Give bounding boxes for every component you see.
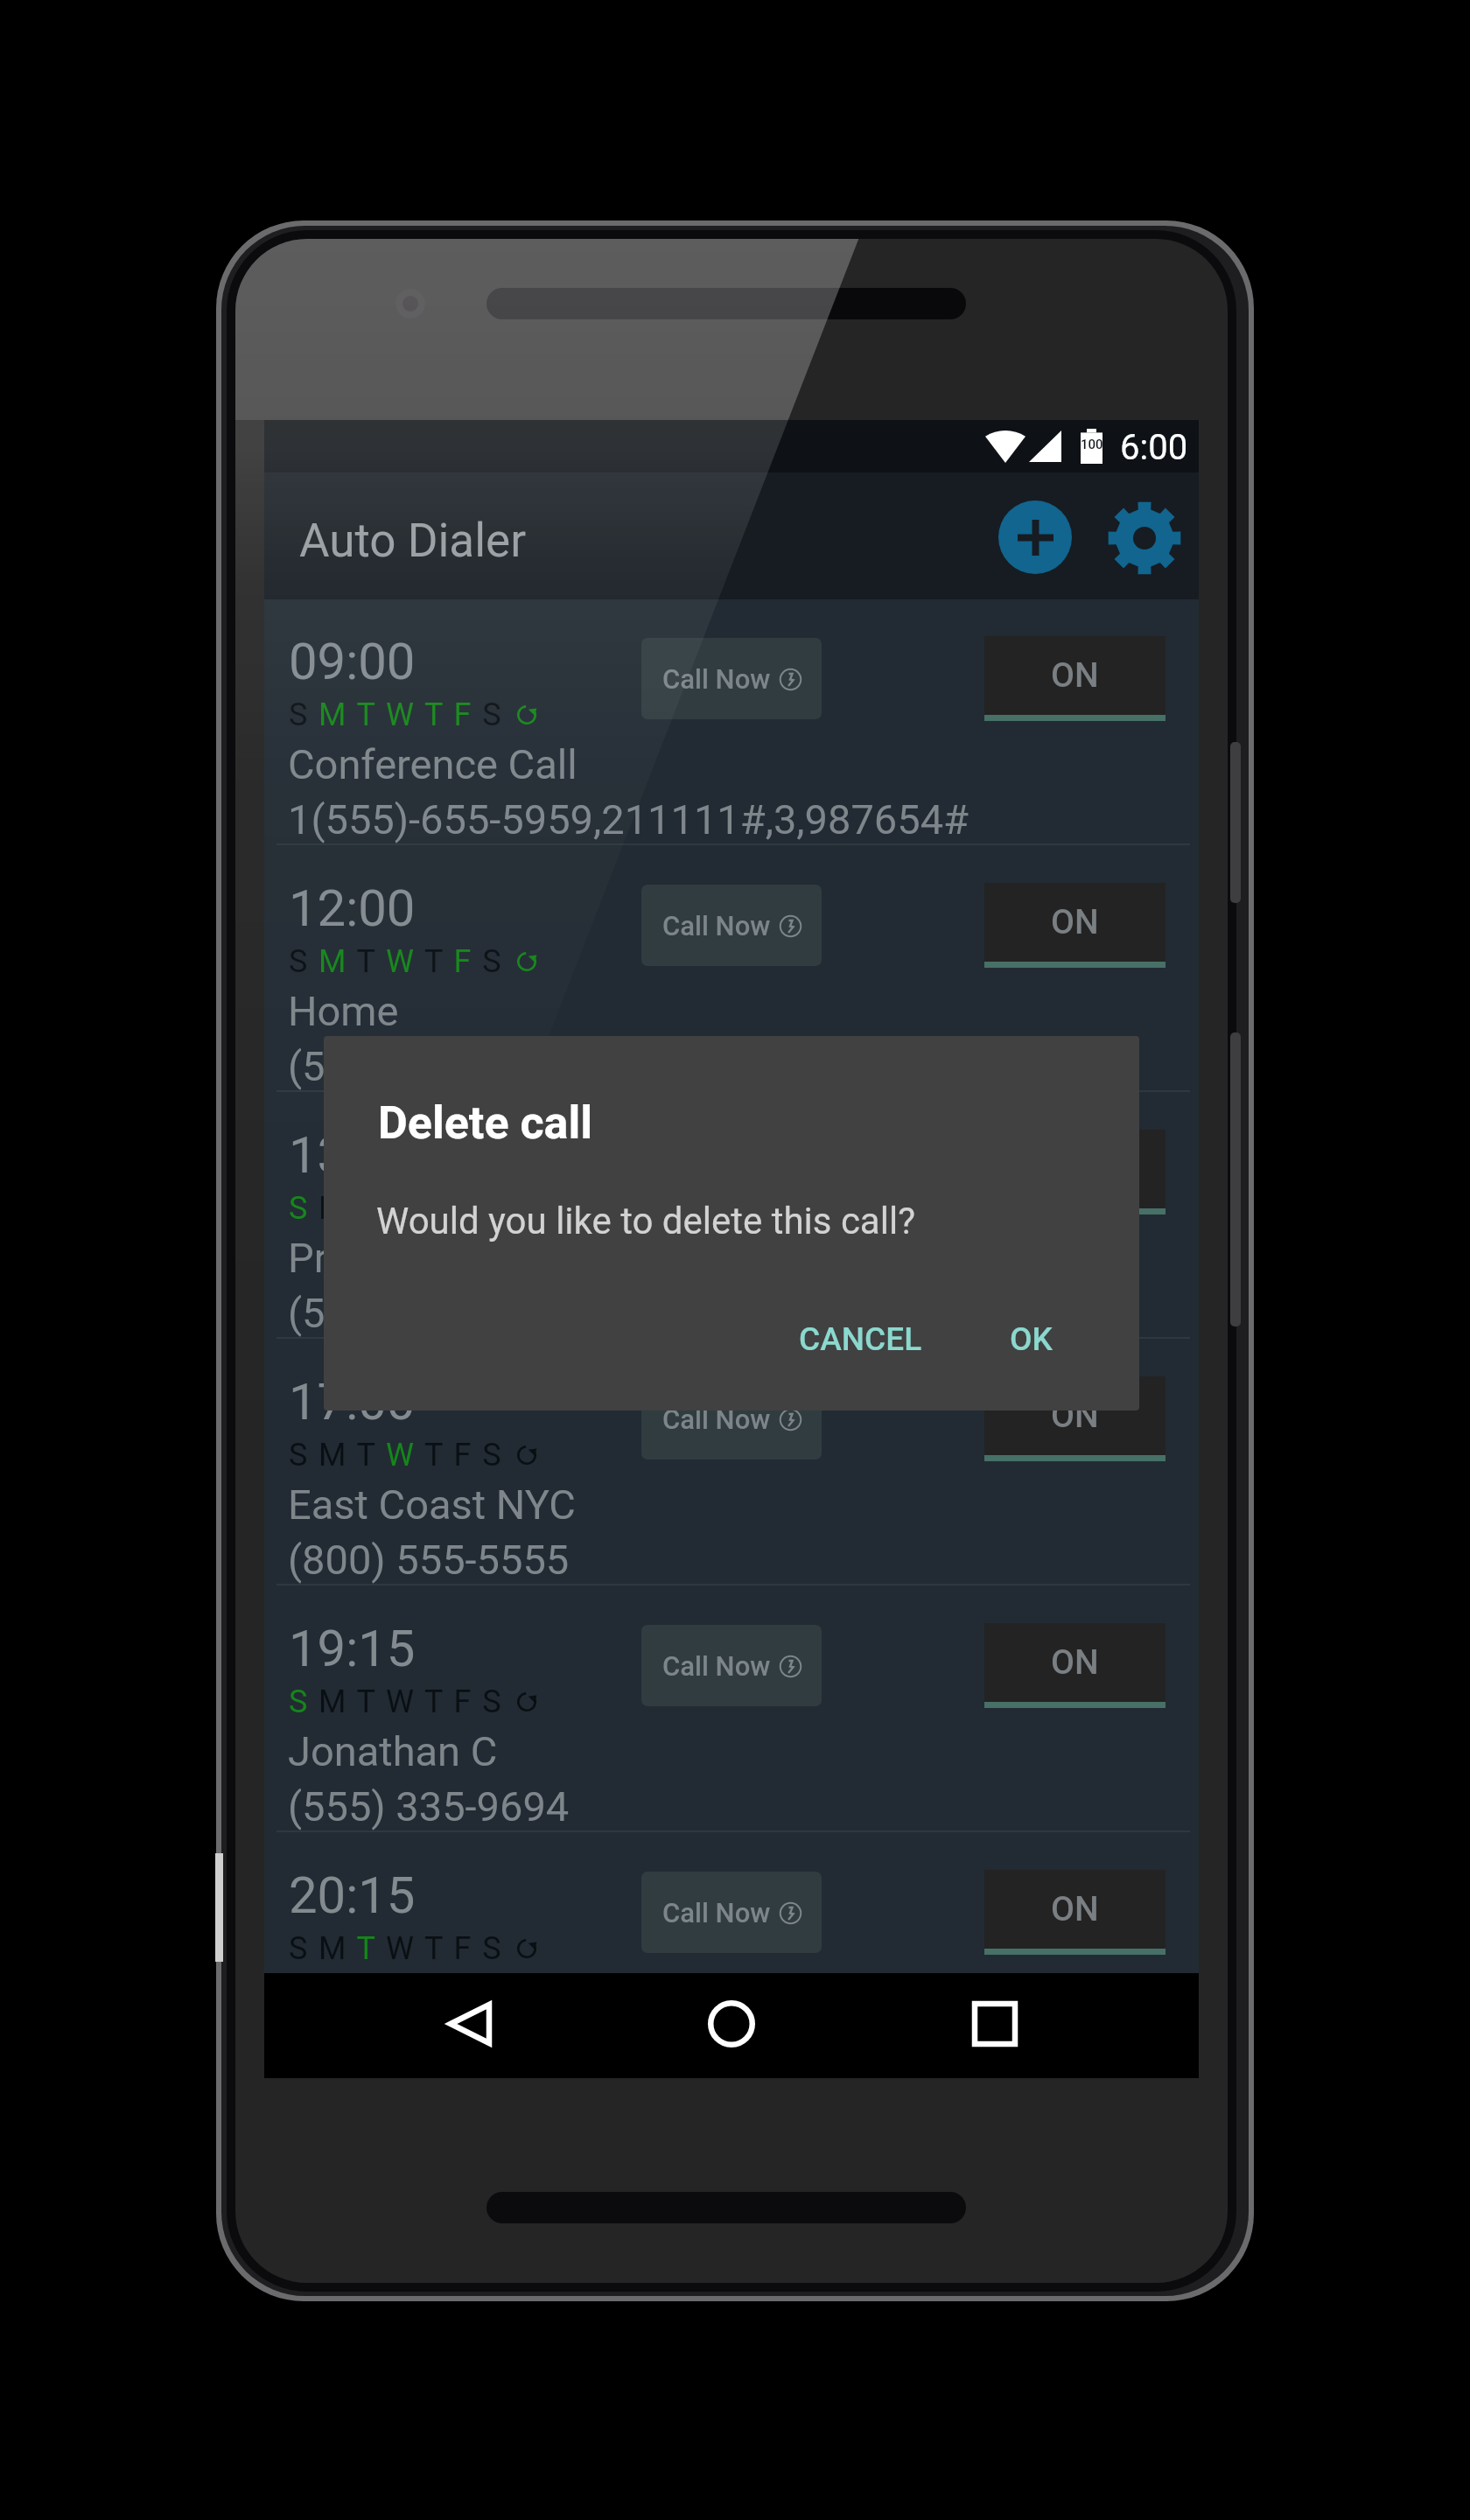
staticText: (555) 744-1122 (288, 1042, 570, 1090)
staticText: 19:15 (289, 1619, 416, 1678)
staticText: Call Now (662, 1897, 771, 1928)
staticText: (555) 201-3344 (288, 1289, 570, 1337)
staticText: (555) 335-9694 (288, 1782, 570, 1830)
staticText: Call Now (662, 910, 771, 941)
staticText: ON (1051, 1889, 1099, 1929)
staticText: 100 (1081, 437, 1102, 452)
staticText: Delete call (378, 1096, 593, 1150)
staticText: 09:00 (289, 632, 416, 691)
button[interactable]: 09:00 (264, 599, 1199, 846)
button[interactable]: ON (984, 1130, 1165, 1214)
staticText: S M T W T F S (289, 1683, 503, 1720)
button[interactable]: Settings (1108, 501, 1181, 575)
staticText: Auto Dialer (299, 514, 527, 568)
staticText: Jonathan C (288, 1727, 498, 1775)
button[interactable]: Call Now (641, 1625, 822, 1706)
button[interactable]: ON (984, 883, 1165, 968)
staticText: S M T W T F S (289, 943, 503, 980)
staticText: Conference Call (288, 740, 577, 788)
button[interactable]: Home (653, 1973, 810, 2074)
staticText: 12:00 (289, 878, 416, 938)
staticText: (555) 222-1188 (288, 2029, 570, 2077)
staticText: ON (1051, 1396, 1099, 1436)
button[interactable]: Call Now (641, 638, 822, 719)
staticText: Call Now (662, 1650, 771, 1682)
staticText: S M T W T F S (289, 1190, 503, 1227)
button[interactable]: Call Now (641, 1872, 822, 1953)
button[interactable]: Call Now (641, 1378, 822, 1459)
staticText: 1(555)-655-5959,211111#,3,987654# (288, 795, 969, 843)
staticText: Home (288, 987, 399, 1035)
button[interactable]: Call Now (641, 1131, 822, 1213)
staticText: 13:30 (289, 1125, 416, 1185)
staticText: Call Now (662, 663, 771, 695)
button[interactable]: Call Now (641, 885, 822, 966)
button[interactable]: ON (984, 1376, 1165, 1461)
staticText: S M T W T F S (289, 696, 503, 733)
staticText: 17:00 (289, 1372, 416, 1431)
button[interactable]: 13:30 (264, 1093, 1199, 1340)
button[interactable]: Recents (916, 1973, 1074, 2074)
staticText: ON (1051, 1642, 1099, 1683)
staticText: Would you like to delete this call? (376, 1200, 915, 1242)
button[interactable]: 20:15 (264, 1833, 1199, 2078)
staticText: ON (1051, 655, 1099, 696)
staticText: S M T W T F S (289, 1930, 503, 1967)
staticText: Call Now (662, 1403, 771, 1435)
button[interactable]: CANCEL (781, 1305, 936, 1366)
staticText: 20:15 (289, 1865, 416, 1925)
button[interactable]: Add call (998, 500, 1072, 574)
staticText: (800) 555-5555 (288, 1536, 570, 1584)
button[interactable]: 19:15 (264, 1586, 1199, 1833)
staticText: East Coast NYC (288, 1480, 576, 1529)
button[interactable]: ON (984, 636, 1165, 721)
button[interactable]: 12:00 (264, 846, 1199, 1093)
button[interactable]: ON (984, 1623, 1165, 1708)
staticText: Private (288, 1234, 416, 1282)
button[interactable]: 17:00 (264, 1340, 1199, 1586)
button[interactable]: Back (391, 1973, 549, 2074)
staticText: S M T W T F S (289, 1437, 503, 1473)
staticText: 6:00 (1120, 427, 1188, 468)
button[interactable]: OK (992, 1305, 1068, 1366)
button[interactable]: ON (984, 1870, 1165, 1955)
staticText: ON (1051, 902, 1099, 942)
